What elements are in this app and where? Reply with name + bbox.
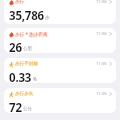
staticText: 26 <box>9 40 22 53</box>
staticText: 72 <box>9 100 22 113</box>
staticText: 35,786 <box>9 8 44 22</box>
staticText: 公分 <box>23 106 33 112</box>
staticText: 11:56 <box>96 31 107 37</box>
staticText: 11:55 <box>96 61 107 67</box>
staticText: 步行 + 跑步距离 <box>15 31 48 37</box>
staticText: 11:55 <box>96 91 107 97</box>
staticText: 步行不对称 <box>15 61 38 67</box>
button[interactable]: 步行 + 跑步距离 <box>4 28 116 53</box>
button[interactable]: 步行不对称 <box>4 58 116 83</box>
staticText: 公里 <box>23 46 33 52</box>
staticText: 步行步长 <box>15 91 34 97</box>
staticText: 步 <box>45 15 50 21</box>
button[interactable]: 步行步长 <box>4 88 116 113</box>
button[interactable]: 步行 <box>4 0 116 24</box>
staticText: 11:56 <box>96 0 107 5</box>
staticText: 步行 <box>15 0 25 5</box>
staticText: 0.33 <box>9 70 32 83</box>
staticText: % <box>33 76 37 82</box>
